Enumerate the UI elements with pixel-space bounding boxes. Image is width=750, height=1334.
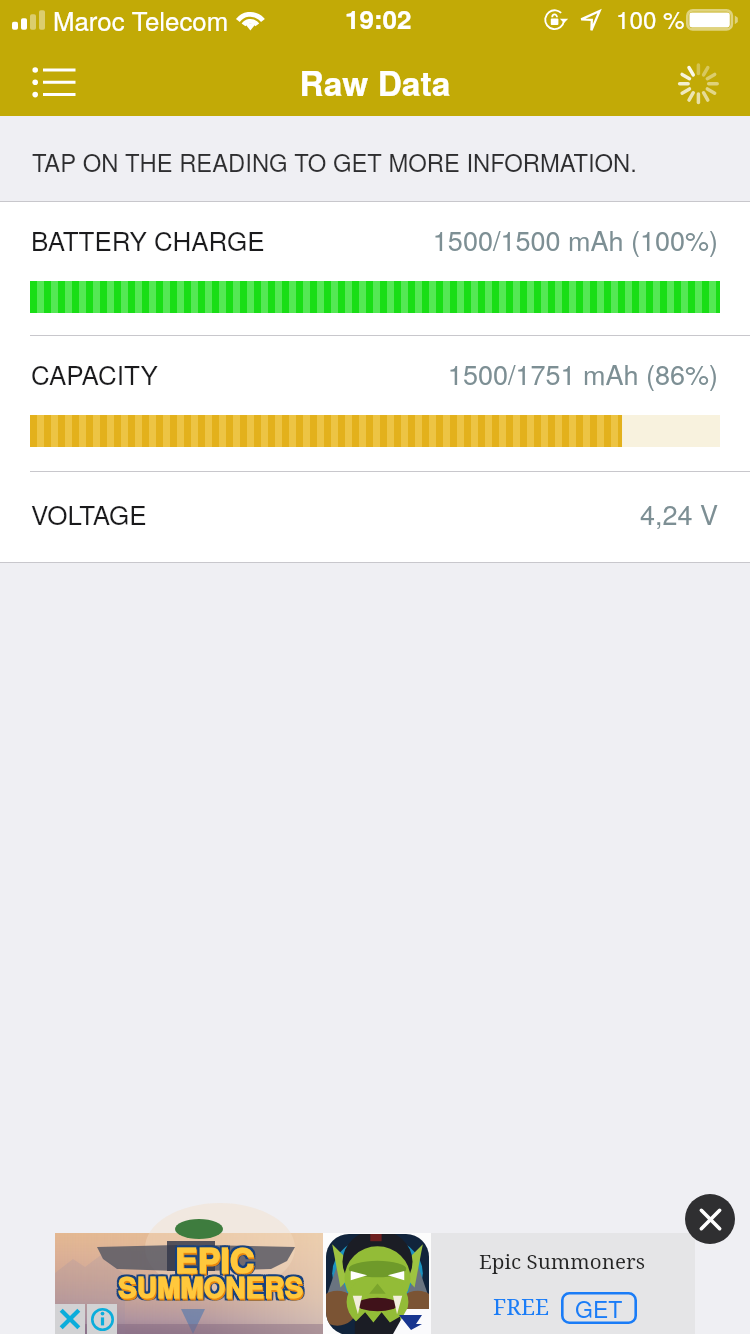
staticText: EPIC — [175, 1233, 255, 1282]
staticText: EPIC — [173, 1237, 253, 1286]
staticText: VOLTAGE — [31, 495, 147, 532]
button[interactable]: Refresh — [670, 56, 726, 112]
staticText: EPIC — [173, 1233, 253, 1282]
staticText: 1500/1500 mAh (100%) — [0, 220, 718, 259]
staticText: EPIC — [175, 1237, 255, 1286]
button[interactable]: BATTERY CHARGE — [0, 202, 750, 335]
staticText: EPIC — [177, 1235, 257, 1284]
staticText: 100 % — [616, 1, 685, 36]
button[interactable]: GET — [561, 1292, 637, 1324]
button[interactable]: EPIC — [55, 1233, 695, 1334]
staticText: Raw Data — [0, 58, 750, 106]
button[interactable]: Menu — [12, 52, 82, 108]
staticText: SUMMONERS — [118, 1264, 304, 1304]
button[interactable]: Close ad — [685, 1194, 735, 1244]
staticText: 19:02 — [345, 0, 412, 37]
staticText: Maroc Telecom — [53, 1, 229, 38]
staticText: SUMMONERS — [116, 1268, 302, 1308]
staticText: SUMMONERS — [116, 1266, 302, 1306]
staticText: EPIC — [175, 1235, 255, 1284]
staticText: SUMMONERS — [120, 1268, 306, 1308]
staticText: 4,24 V — [0, 494, 718, 533]
staticText: SUMMONERS — [118, 1266, 304, 1306]
staticText: CAPACITY — [31, 355, 158, 392]
staticText: EPIC — [177, 1233, 257, 1282]
button[interactable]: Close — [55, 1304, 85, 1334]
staticText: EPIC — [173, 1235, 253, 1284]
staticText: SUMMONERS — [116, 1264, 302, 1304]
staticText: SUMMONERS — [118, 1268, 304, 1308]
staticText: SUMMONERS — [120, 1264, 306, 1304]
staticText: SUMMONERS — [120, 1266, 306, 1306]
staticText: BATTERY CHARGE — [31, 221, 265, 258]
staticText: GET — [575, 1292, 623, 1324]
button[interactable]: Ad information — [87, 1304, 117, 1334]
button[interactable]: VOLTAGE — [0, 472, 750, 562]
staticText: EPIC — [176, 1237, 256, 1286]
button[interactable]: CAPACITY — [0, 336, 750, 469]
staticText: 1500/1751 mAh (86%) — [0, 354, 718, 393]
staticText: SUMMONERS — [119, 1268, 305, 1308]
staticText: FREE — [493, 1291, 550, 1322]
staticText: Epic Summoners — [429, 1247, 695, 1275]
staticText: EPIC — [177, 1237, 257, 1286]
staticText: TAP ON THE READING TO GET MORE INFORMATI… — [32, 145, 637, 179]
